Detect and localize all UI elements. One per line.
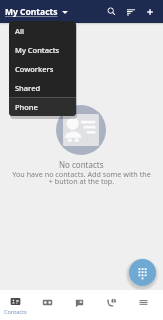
button[interactable]: Sort [121,0,140,23]
staticText: My Contacts [5,6,58,18]
button[interactable]: Phone [9,98,76,116]
staticText: No contacts [59,159,104,170]
staticText: My Contacts [15,45,60,55]
button[interactable]: Contacts [0,290,31,320]
button[interactable]: My Contacts [0,3,72,20]
button[interactable]: Add contact [140,0,159,23]
button[interactable]: My Contacts [9,40,76,59]
button[interactable]: Dialpad [129,259,156,286]
staticText: All [15,26,24,36]
staticText: You have no contacts. Add some with the … [12,169,151,186]
staticText: Phone [15,102,38,112]
button[interactable]: Coworkers [9,59,76,78]
staticText: Contacts [4,308,27,315]
staticText: Coworkers [15,64,54,74]
button[interactable]: Shared [9,78,76,97]
button[interactable]: Search [102,0,121,23]
button[interactable]: Messages [63,290,95,320]
button[interactable]: Voicemail [31,290,63,320]
button[interactable]: More [127,290,159,320]
button[interactable]: All [9,21,76,40]
staticText: Shared [15,83,41,93]
button[interactable]: Calls [95,290,127,320]
